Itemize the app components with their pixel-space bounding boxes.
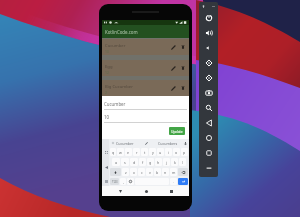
- button[interactable]: Pin: [199, 2, 208, 10]
- staticText: j: [166, 160, 167, 165]
- staticText: d: [133, 160, 136, 165]
- button[interactable]: Update: [169, 127, 185, 135]
- button[interactable]: Big Cucumber: [102, 80, 189, 96]
- staticText: g: [149, 160, 152, 165]
- button[interactable]: Overview: [199, 145, 218, 160]
- button[interactable]: Back: [199, 115, 218, 130]
- staticText: f: [142, 160, 144, 165]
- button[interactable]: Egg: [102, 60, 189, 76]
- staticText: u: [159, 150, 162, 155]
- button[interactable]: Cucumber: [102, 39, 189, 55]
- staticText: h: [157, 160, 160, 165]
- staticText: m: [172, 170, 176, 175]
- button[interactable]: Fullscreen keyboard: [103, 178, 109, 184]
- button[interactable]: Edit: [168, 42, 178, 52]
- button[interactable]: i: [165, 148, 172, 156]
- button[interactable]: [127, 178, 134, 185]
- staticText: o: [175, 150, 178, 155]
- button[interactable]: c: [138, 168, 145, 176]
- staticText: Cucumber: [105, 43, 126, 49]
- staticText: l: [182, 160, 183, 165]
- staticText: x: [133, 170, 135, 175]
- staticText: Cucumber: [104, 101, 126, 107]
- staticText: v: [149, 170, 151, 175]
- button[interactable]: .: [170, 178, 177, 185]
- staticText: 2: [105, 90, 107, 95]
- button[interactable]: Edit: [168, 63, 178, 73]
- staticText: w: [119, 150, 122, 155]
- button[interactable]: Cucumber: [116, 141, 134, 146]
- button[interactable]: r: [133, 148, 140, 156]
- button[interactable]: Power: [199, 10, 218, 25]
- button[interactable]: a: [112, 158, 120, 166]
- button[interactable]: o: [173, 148, 180, 156]
- button[interactable]: Volume down: [199, 40, 218, 55]
- button[interactable]: Delete: [178, 42, 188, 52]
- button[interactable]: Home: [199, 130, 218, 145]
- button[interactable]: t: [141, 148, 148, 156]
- staticText: p: [183, 150, 186, 155]
- staticText: Update: [171, 129, 183, 134]
- button[interactable]: [178, 168, 188, 176]
- button[interactable]: q: [110, 148, 116, 156]
- button[interactable]: x: [130, 168, 137, 176]
- button[interactable]: w: [117, 148, 124, 156]
- button[interactable]: Rotate left: [199, 55, 218, 70]
- staticText: r: [136, 150, 138, 155]
- button[interactable]: Rotate right: [199, 70, 218, 85]
- button[interactable]: ,: [120, 178, 126, 185]
- button[interactable]: Volume up: [199, 25, 218, 40]
- button[interactable]: e: [125, 148, 132, 156]
- button[interactable]: [178, 178, 188, 185]
- button[interactable]: Minimize: [208, 2, 218, 10]
- staticText: s: [124, 160, 126, 165]
- button[interactable]: Zoom: [199, 100, 218, 115]
- button[interactable]: Recents: [164, 186, 178, 196]
- button[interactable]: s: [121, 158, 129, 166]
- button[interactable]: d: [130, 158, 138, 166]
- button[interactable]: Handwriting: [143, 140, 149, 146]
- staticText: ,: [123, 179, 124, 184]
- button[interactable]: m: [170, 168, 177, 176]
- staticText: c: [141, 170, 143, 175]
- button[interactable]: Edit: [168, 83, 178, 93]
- button[interactable]: b: [154, 168, 161, 176]
- staticText: e: [127, 150, 130, 155]
- staticText: Big Cucumber: [105, 84, 133, 90]
- staticText: z: [125, 170, 127, 175]
- button[interactable]: Back: [113, 186, 127, 196]
- staticText: i: [168, 150, 169, 155]
- staticText: a: [115, 160, 118, 165]
- button[interactable]: p: [181, 148, 188, 156]
- staticText: 10: [104, 114, 110, 120]
- button[interactable]: Screenshot: [199, 85, 218, 100]
- button[interactable]: Home: [139, 186, 153, 196]
- button[interactable]: f: [139, 158, 146, 166]
- button[interactable]: Cucumbers: [158, 141, 178, 146]
- staticText: y: [152, 150, 154, 155]
- button[interactable]: z: [122, 168, 129, 176]
- staticText: 12: [105, 70, 109, 75]
- button[interactable]: ?123: [110, 178, 119, 185]
- staticText: ?123: [112, 180, 118, 184]
- button[interactable]: j: [163, 158, 170, 166]
- button[interactable]: More: [199, 160, 218, 175]
- button[interactable]: l: [179, 158, 186, 166]
- button[interactable]: Delete: [178, 83, 188, 93]
- button[interactable]: [110, 168, 121, 176]
- button[interactable]: n: [162, 168, 169, 176]
- staticText: q: [112, 150, 115, 155]
- button[interactable]: k: [171, 158, 178, 166]
- staticText: Egg: [105, 64, 113, 70]
- button[interactable]: h: [155, 158, 162, 166]
- button[interactable]: Microphone: [183, 141, 188, 146]
- button[interactable]: g: [147, 158, 154, 166]
- button[interactable]: y: [149, 148, 156, 156]
- staticText: n: [164, 170, 167, 175]
- button[interactable]: Delete: [178, 63, 188, 73]
- button[interactable]: u: [157, 148, 164, 156]
- button[interactable]: Move keyboard left: [103, 164, 109, 170]
- button[interactable]: v: [146, 168, 153, 176]
- button[interactable]: Resize keyboard: [103, 149, 109, 155]
